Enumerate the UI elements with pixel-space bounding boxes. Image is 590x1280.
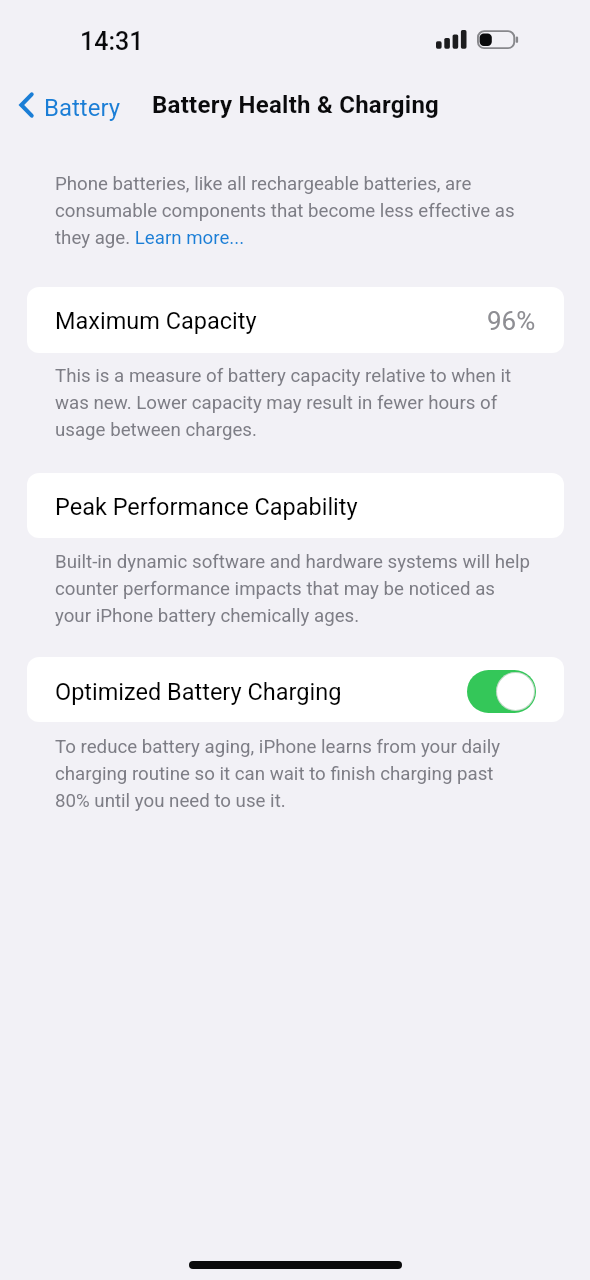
button[interactable]: Learn more [134, 226, 246, 251]
staticText: Optimized Battery Charging [55, 678, 342, 706]
staticText: Maximum Capacity [55, 307, 257, 335]
staticText: To reduce battery aging, iPhone learns f… [55, 731, 530, 812]
button[interactable]: Maximum Capacity [27, 287, 564, 353]
staticText: 14:31 [80, 27, 144, 56]
staticText: Peak Performance Capability [55, 493, 358, 521]
staticText: Phone batteries, like all rechargeable b… [55, 168, 530, 249]
staticText: Battery [44, 94, 121, 122]
staticText: Built-in dynamic software and hardware s… [55, 546, 530, 627]
button[interactable]: Optimized Battery Charging [467, 670, 536, 713]
button[interactable]: Peak Performance Capability [27, 473, 564, 538]
staticText: Battery Health & Charging [152, 91, 440, 119]
staticText: This is a measure of battery capacity re… [55, 360, 530, 441]
staticText: 96% [487, 306, 536, 336]
button[interactable]: Optimized Battery Charging [27, 657, 564, 722]
button[interactable]: Back to Battery [12, 88, 127, 128]
